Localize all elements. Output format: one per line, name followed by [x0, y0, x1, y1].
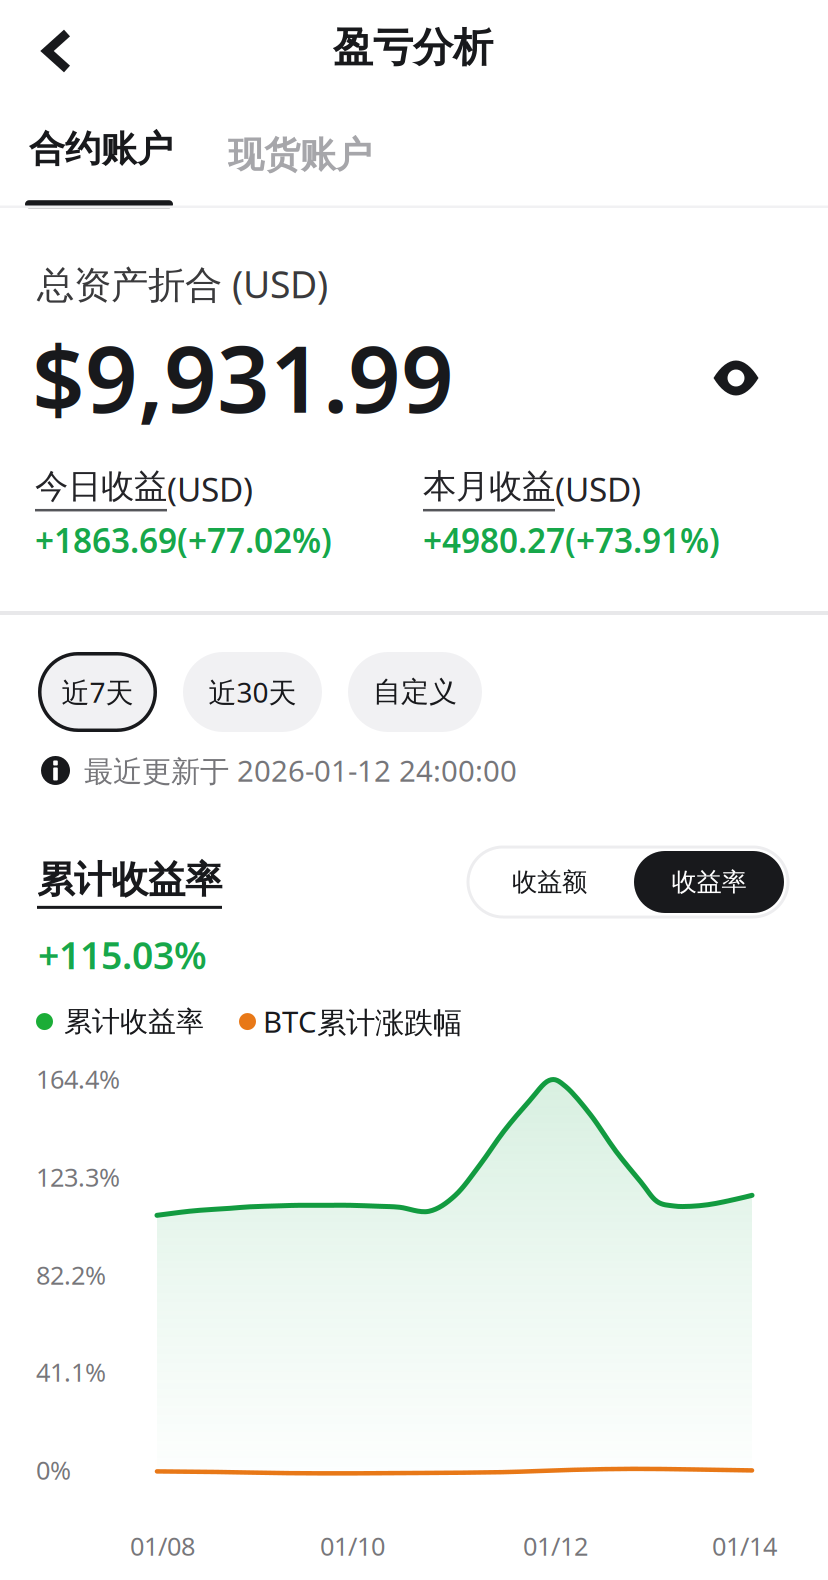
button[interactable]: Back	[17, 11, 97, 91]
staticText: 01/14	[712, 1529, 777, 1563]
staticText: 累计收益率	[64, 1004, 204, 1039]
staticText: +4980.27(+73.91%)	[423, 518, 720, 562]
button[interactable]: 近7天	[38, 652, 157, 732]
staticText: 盈亏分析	[333, 23, 493, 72]
staticText: 累计收益率	[37, 857, 222, 903]
button[interactable]: 本月收益	[423, 466, 641, 511]
staticText: 今日收益	[35, 466, 167, 507]
staticText: $9,931.99	[32, 316, 454, 438]
staticText: 收益额	[512, 866, 587, 897]
button[interactable]: Hide balance	[701, 343, 771, 413]
button[interactable]: 收益额	[468, 848, 631, 916]
staticText: 最近更新于 2026-01-12 24:00:00	[84, 751, 517, 790]
staticText: 164.4%	[36, 1062, 120, 1096]
staticText: +1863.69(+77.02%)	[35, 518, 332, 562]
staticText: 总资产折合 (USD)	[37, 259, 328, 309]
staticText: 01/12	[523, 1529, 588, 1563]
staticText: 合约账户	[29, 127, 173, 171]
button[interactable]: 今日收益	[35, 466, 253, 511]
staticText: 123.3%	[36, 1160, 120, 1194]
staticText: BTC累计涨跌幅	[263, 1002, 462, 1041]
button[interactable]: 现货账户	[210, 119, 390, 191]
staticText: 82.2%	[36, 1258, 106, 1292]
staticText: 41.1%	[36, 1355, 106, 1389]
staticText: (USD)	[555, 467, 641, 511]
staticText: 0%	[36, 1453, 71, 1487]
button[interactable]: 盈亏分析	[333, 23, 493, 72]
staticText: +115.03%	[38, 930, 207, 980]
button[interactable]: 收益率	[634, 851, 784, 913]
staticText: 本月收益	[423, 466, 555, 507]
staticText: 现货账户	[228, 133, 372, 177]
staticText: (USD)	[167, 467, 253, 511]
button[interactable]: 合约账户	[15, 119, 187, 208]
staticText: 自定义	[373, 675, 457, 709]
staticText: 收益率	[671, 866, 746, 897]
staticText: 01/08	[130, 1529, 195, 1563]
staticText: 近7天	[61, 673, 133, 711]
button[interactable]: 近30天	[183, 652, 322, 732]
staticText: 近30天	[208, 673, 296, 711]
button[interactable]: 自定义	[348, 652, 482, 732]
button[interactable]: 累计收益率	[37, 857, 222, 909]
staticText: 01/10	[320, 1529, 385, 1563]
